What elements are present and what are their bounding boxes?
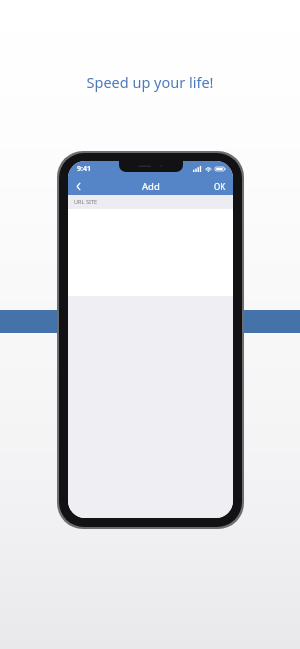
button[interactable]: Back [68, 177, 88, 195]
staticText: Speed up your life! [86, 72, 214, 92]
button[interactable]: OK [207, 177, 233, 195]
staticText: 9:41 [77, 164, 91, 174]
staticText: Add [142, 180, 160, 193]
staticText: URL SITE [74, 198, 98, 206]
staticText: OK [214, 181, 226, 192]
